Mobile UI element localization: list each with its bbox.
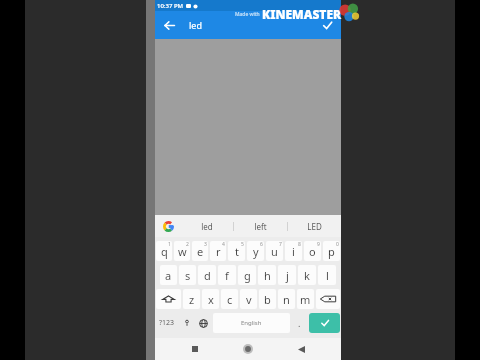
staticText: q [161,244,168,259]
staticText: x [208,292,214,307]
button[interactable]: z [183,289,200,309]
button[interactable]: e [192,241,208,261]
staticText: English [241,319,262,327]
button[interactable]: f [218,265,236,285]
staticText: m [300,292,311,307]
staticText: t [235,244,239,259]
staticText: 10:37 PM [157,2,184,10]
button[interactable]: j [278,265,296,285]
staticText: led [189,19,202,31]
button[interactable]: w [174,241,190,261]
button[interactable]: Period [292,313,307,333]
button[interactable]: c [221,289,238,309]
button[interactable]: Recent apps [182,338,208,360]
staticText: p [328,244,335,259]
button[interactable]: l [318,265,336,285]
staticText: w [178,244,187,259]
staticText: left [254,221,267,232]
staticText: j [286,268,289,283]
button[interactable]: g [238,265,256,285]
staticText: a [165,268,172,283]
button[interactable]: i [285,241,302,261]
button[interactable]: Shift [156,289,181,309]
button[interactable]: Home [235,338,261,360]
staticText: 3 [204,241,207,248]
button[interactable]: v [240,289,257,309]
staticText: Made with [235,11,260,18]
staticText: k [304,268,310,283]
staticText: e [197,244,204,259]
staticText: 7 [279,241,282,248]
staticText: d [204,268,211,283]
button[interactable]: a [160,265,177,285]
button[interactable]: left [234,215,287,237]
staticText: . [298,317,301,329]
button[interactable]: Comma and voice input [179,313,194,333]
staticText: 0 [336,241,339,248]
staticText: 2 [186,241,189,248]
button[interactable]: Back [155,11,183,39]
staticText: 9 [317,241,320,248]
button[interactable]: r [210,241,226,261]
button[interactable]: b [259,289,276,309]
button[interactable]: x [202,289,219,309]
button[interactable]: m [297,289,314,309]
staticText: ?123 [159,318,175,328]
button[interactable]: English [213,313,290,333]
staticText: LED [307,221,322,232]
staticText: g [244,268,251,283]
staticText: 6 [260,241,263,248]
button[interactable]: Backspace [316,289,340,309]
staticText: n [283,292,290,307]
staticText: b [264,292,271,307]
staticText: s [185,268,191,283]
button[interactable]: q [156,241,172,261]
button[interactable]: Done [313,11,341,39]
button[interactable]: n [278,289,295,309]
button[interactable]: k [298,265,316,285]
staticText: r [216,244,221,259]
staticText: v [246,292,252,307]
button[interactable]: d [198,265,216,285]
staticText: z [189,292,195,307]
staticText: c [227,292,233,307]
staticText: KINEMASTER [262,6,342,22]
staticText: 4 [222,241,225,248]
staticText: h [264,268,271,283]
staticText: i [292,244,295,259]
staticText: u [271,244,278,259]
staticText: y [253,244,259,259]
button[interactable]: y [247,241,264,261]
staticText: 5 [241,241,244,248]
button[interactable]: o [304,241,321,261]
button[interactable]: led [181,215,233,237]
button[interactable]: LED [288,215,341,237]
staticText: 1 [168,241,171,248]
staticText: l [326,268,329,283]
staticText: o [309,244,316,259]
staticText: led [201,221,213,232]
button[interactable]: Enter [309,313,340,333]
button[interactable]: t [228,241,245,261]
staticText: 8 [298,241,301,248]
button[interactable]: led [183,11,313,39]
button[interactable]: u [266,241,283,261]
button[interactable]: s [179,265,196,285]
button[interactable]: p [323,241,340,261]
button[interactable]: Back [288,338,314,360]
button[interactable]: ?123 [156,313,177,333]
button[interactable]: Google [155,215,181,237]
button[interactable]: h [258,265,276,285]
button[interactable]: Change language [196,313,211,333]
staticText: f [225,268,229,283]
